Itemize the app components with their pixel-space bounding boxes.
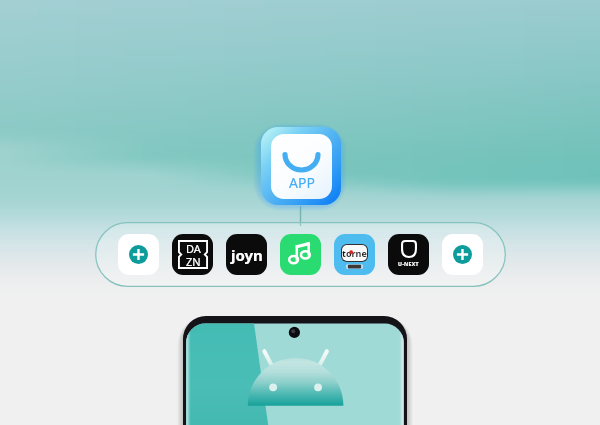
staticText: torne <box>342 247 367 259</box>
button[interactable]: Add app <box>118 234 159 275</box>
staticText: U-NEXT <box>398 260 419 267</box>
button[interactable]: Joyn <box>226 234 267 275</box>
staticText: APP <box>289 173 315 192</box>
button[interactable]: DAZN <box>172 234 213 275</box>
staticText: DA <box>186 241 201 256</box>
button[interactable]: Torne <box>334 234 375 275</box>
button[interactable]: App store <box>261 127 341 205</box>
button[interactable]: U-NEXT <box>388 234 429 275</box>
button[interactable]: Add app <box>442 234 483 275</box>
button[interactable]: Music <box>280 234 321 275</box>
staticText: joyn <box>231 245 263 265</box>
staticText: ZN <box>186 254 201 268</box>
